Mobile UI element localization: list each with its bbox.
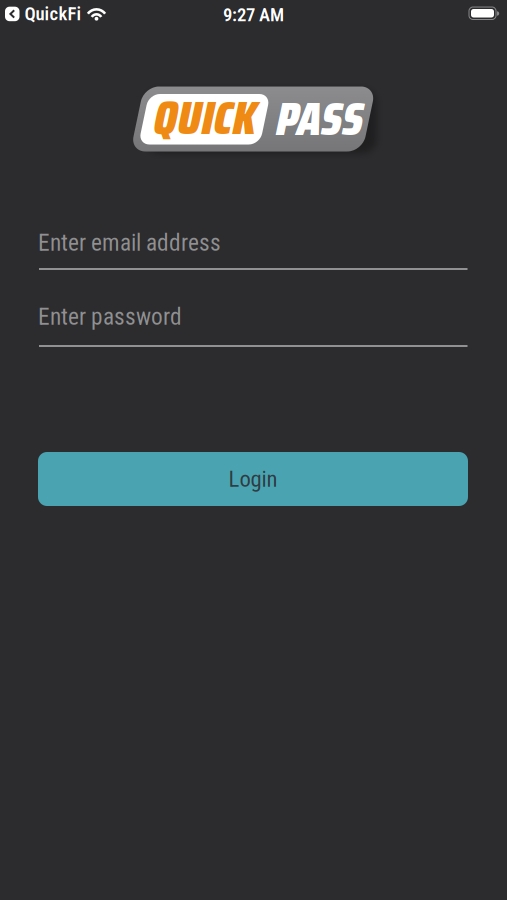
- button[interactable]: Enter password: [39, 303, 467, 347]
- button[interactable]: Enter email address: [39, 229, 467, 270]
- staticText: QUICK: [161, 81, 264, 154]
- button[interactable]: QuickFi: [5, 3, 106, 25]
- staticText: PASS: [284, 82, 371, 155]
- staticText: QuickFi: [24, 3, 81, 25]
- staticText: Enter password: [38, 303, 182, 330]
- button[interactable]: Login: [38, 452, 468, 506]
- staticText: 9:27 AM: [223, 4, 284, 26]
- staticText: Enter email address: [38, 229, 221, 256]
- staticText: Login: [228, 466, 277, 492]
